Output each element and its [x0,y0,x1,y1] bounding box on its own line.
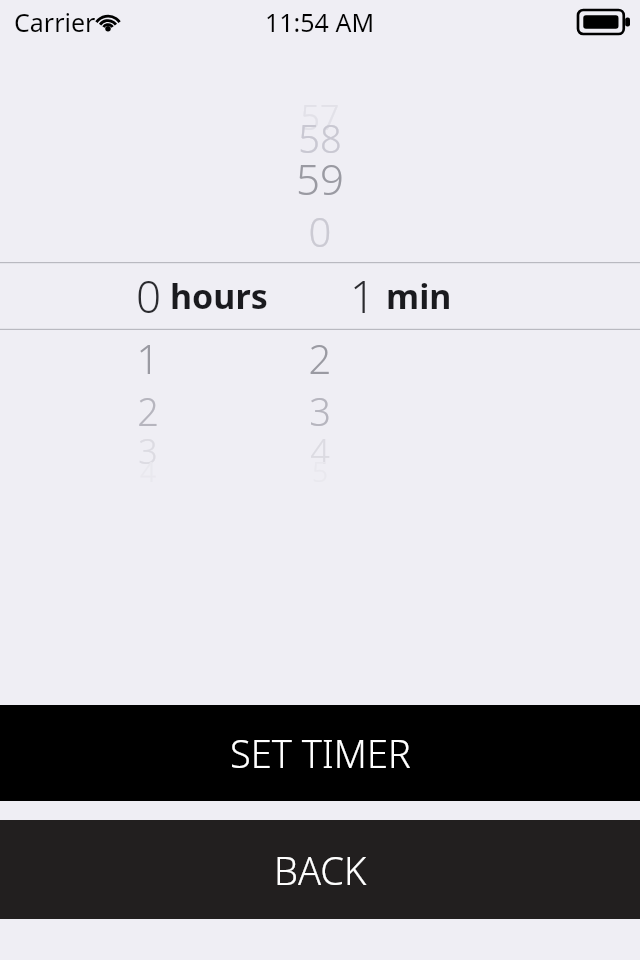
staticText: 1 [0,331,296,385]
button[interactable]: SET TIMER [0,705,640,801]
staticText: 2 [0,331,640,385]
staticText: SET TIMER [230,727,411,779]
staticText: min [386,273,452,319]
staticText: 11:54 AM [265,5,375,39]
staticText: 58 [0,112,640,164]
staticText: hours [170,273,268,319]
button[interactable]: 0 [0,262,640,330]
staticText: 2 [0,385,296,437]
staticText: Carrier [14,5,96,39]
staticText: BACK [274,844,367,896]
staticText: 3 [0,385,640,437]
staticText: 59 [0,150,640,207]
staticText: 1 [350,266,376,326]
button[interactable]: BACK [0,820,640,919]
staticText: 0 [136,266,162,326]
